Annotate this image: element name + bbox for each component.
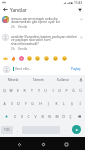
staticText: Kullanıcı (57, 78, 70, 82)
button[interactable]: Tamam (26, 75, 51, 84)
staticText: E (17, 88, 19, 93)
button[interactable]: Shift (1, 110, 11, 122)
button[interactable]: B (39, 110, 46, 122)
staticText: T (31, 88, 33, 93)
staticText: Tamam (33, 78, 44, 82)
button[interactable]: Emoji (42, 54, 51, 63)
staticText: K (55, 101, 58, 106)
staticText: Mesela (8, 78, 19, 82)
staticText: Yanıtla (18, 47, 28, 51)
button[interactable]: Voice input (76, 75, 85, 84)
button[interactable]: M (53, 110, 60, 122)
button[interactable]: I (49, 84, 56, 96)
staticText: Ğ (72, 88, 75, 93)
staticText: Ü (79, 88, 82, 93)
button[interactable]: Send (72, 125, 81, 134)
button[interactable]: Y (35, 84, 42, 96)
button[interactable]: Paylaş (70, 65, 82, 73)
staticText: W (9, 88, 13, 93)
button[interactable]: mnaux.aaromrsmzpk ordução davamındaki gi… (0, 14, 85, 29)
button[interactable]: Q (1, 84, 7, 96)
staticText: 13:43 (74, 1, 83, 5)
button[interactable]: Ü (77, 84, 84, 96)
button[interactable]: X (18, 110, 25, 122)
button[interactable]: J (44, 97, 52, 109)
button[interactable]: Emoji (1, 54, 9, 63)
staticText: ?123 (4, 128, 10, 132)
staticText: U (44, 88, 47, 93)
button[interactable]: Ş (68, 97, 76, 109)
button[interactable]: Emoji (33, 54, 42, 63)
button[interactable]: K (52, 97, 60, 109)
staticText: İ (79, 101, 81, 106)
staticText: P (65, 88, 68, 93)
button[interactable]: C (25, 110, 32, 122)
button[interactable]: F (22, 97, 29, 109)
button[interactable]: Filter (74, 5, 85, 14)
staticText: , (17, 127, 18, 132)
button[interactable]: Ç (67, 110, 74, 122)
button[interactable]: Z (11, 110, 18, 122)
staticText: H (39, 101, 42, 106)
staticText: J (48, 101, 49, 106)
button[interactable]: Emoji (51, 54, 60, 63)
button[interactable]: N (46, 110, 53, 122)
button[interactable]: Emoji (17, 54, 25, 63)
staticText: N (48, 114, 51, 119)
button[interactable]: ?123 (1, 126, 13, 134)
button[interactable]: G (29, 97, 36, 109)
button[interactable]: Backspace (74, 110, 84, 122)
button[interactable]: Like (78, 16, 84, 22)
button[interactable]: W (7, 84, 14, 96)
button[interactable]: Kullanıcı (51, 75, 76, 84)
button[interactable]: Home (38, 139, 48, 149)
staticText: acwkiler Bunadino kaptım parlayan etkile… (11, 34, 77, 46)
button[interactable]: Back (0, 5, 10, 14)
staticText: Ş (71, 101, 73, 106)
staticText: V (34, 114, 37, 119)
button[interactable]: U (42, 84, 49, 96)
button[interactable]: O (56, 84, 63, 96)
button[interactable]: E (14, 84, 21, 96)
button[interactable]: H (36, 97, 44, 109)
staticText: 2h (11, 47, 15, 51)
staticText: R (23, 88, 26, 93)
button[interactable]: S (8, 97, 15, 109)
staticText: L (63, 101, 65, 106)
button[interactable]: acwkiler Bunadino kaptım parlayan etkile… (0, 29, 85, 51)
staticText: S (11, 101, 13, 106)
staticText: O (58, 88, 61, 93)
button[interactable]: A (1, 97, 8, 109)
button[interactable]: D (15, 97, 22, 109)
staticText: I (52, 88, 54, 93)
staticText: B (41, 114, 44, 119)
button[interactable]: , (13, 123, 21, 136)
staticText: A (3, 101, 6, 106)
staticText: C (27, 114, 30, 119)
button[interactable]: L (60, 97, 68, 109)
staticText: Yanıtla (18, 25, 28, 29)
button[interactable]: Like (78, 34, 84, 40)
button[interactable]: Back (14, 139, 24, 149)
staticText: . (65, 127, 66, 132)
button[interactable]: Emoji (60, 54, 69, 63)
button[interactable]: R (21, 84, 28, 96)
button[interactable]: İ (76, 97, 84, 109)
staticText: Y (38, 88, 40, 93)
button[interactable]: Emoji (25, 54, 33, 63)
staticText: Paylaş (71, 67, 81, 71)
staticText: mnaux.aaromrsmzpk ordução davamındaki gi… (11, 16, 77, 24)
button[interactable]: V (32, 110, 39, 122)
staticText: Ö (62, 114, 65, 119)
button[interactable]: Emoji (9, 54, 17, 63)
staticText: G (31, 101, 34, 106)
button[interactable]: Ö (60, 110, 67, 122)
button[interactable]: P (63, 84, 70, 96)
button[interactable]: Mesela (0, 75, 26, 84)
button[interactable]: Ğ (70, 84, 77, 96)
button[interactable]: T (28, 84, 35, 96)
staticText: M (55, 114, 59, 119)
button[interactable]: Recents (61, 139, 71, 149)
